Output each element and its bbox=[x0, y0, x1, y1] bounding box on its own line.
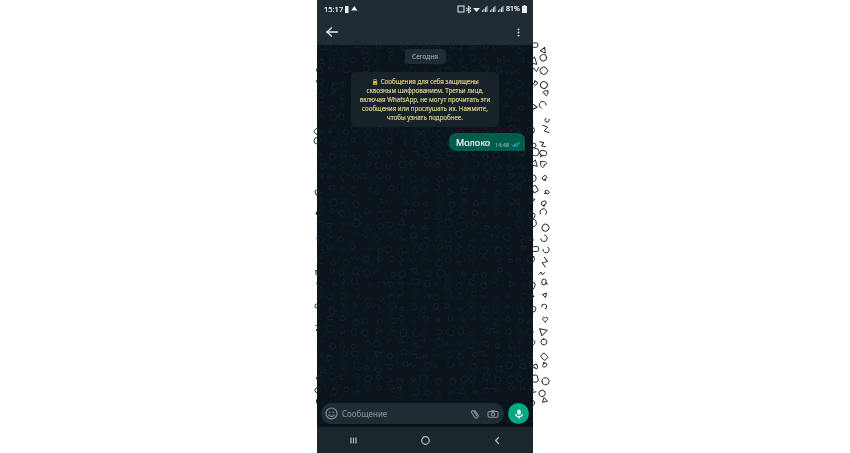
button[interactable]: Voice message bbox=[508, 403, 529, 424]
staticText: Сегодня bbox=[412, 52, 439, 61]
button[interactable]: More options bbox=[507, 21, 529, 43]
button[interactable]: Молоко bbox=[449, 133, 525, 151]
button[interactable]: 🔒 Сообщения для себя защищены сквозным ш… bbox=[351, 72, 499, 127]
staticText: Молоко bbox=[456, 136, 491, 148]
staticText: 81% bbox=[506, 4, 520, 14]
button[interactable]: Сообщение bbox=[321, 403, 504, 424]
button[interactable]: Camera bbox=[486, 407, 499, 420]
staticText: 15:17 bbox=[324, 4, 344, 14]
button[interactable]: Back bbox=[321, 21, 343, 43]
button[interactable]: Attach bbox=[468, 407, 481, 420]
button[interactable]: Сегодня bbox=[405, 49, 446, 64]
button[interactable]: Recents bbox=[317, 427, 389, 453]
button[interactable]: Home bbox=[389, 427, 461, 453]
staticText: Сообщение bbox=[342, 408, 388, 419]
staticText: 🔒 Сообщения для себя защищены сквозным ш… bbox=[358, 77, 492, 122]
button[interactable]: Back bbox=[461, 427, 533, 453]
staticText: 14:48 bbox=[495, 141, 510, 148]
